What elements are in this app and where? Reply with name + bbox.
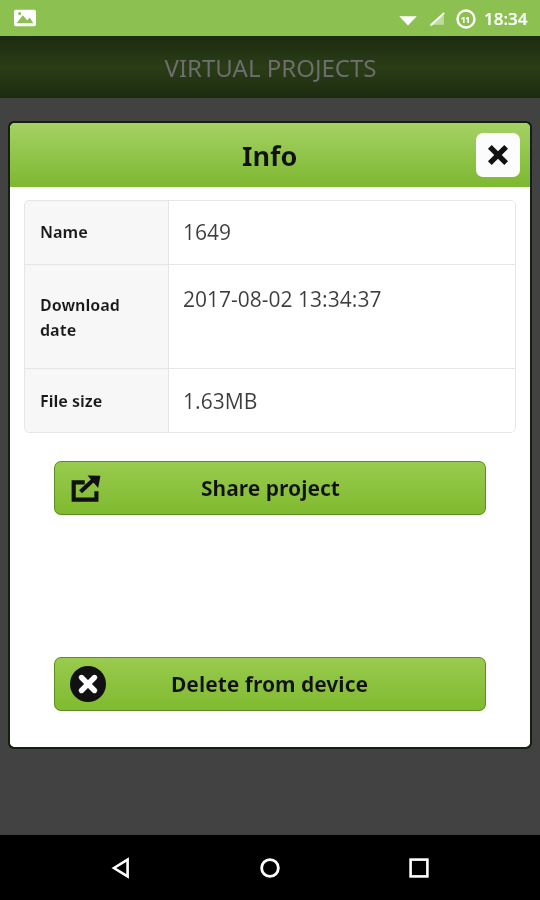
- staticText: 1.63MB: [183, 387, 258, 416]
- button[interactable]: Share project: [54, 461, 486, 515]
- button[interactable]: Recents: [391, 840, 447, 896]
- staticText: 2017-08-02 13:34:37: [183, 285, 382, 314]
- staticText: File size: [40, 390, 103, 412]
- staticText: 1649: [183, 218, 232, 247]
- staticText: Info: [242, 137, 298, 174]
- staticText: 18:34: [484, 7, 528, 30]
- button[interactable]: Close: [476, 133, 520, 177]
- staticText: 11: [461, 14, 471, 25]
- staticText: Name: [40, 221, 88, 243]
- button[interactable]: Back: [93, 840, 149, 896]
- staticText: Delete from device: [171, 670, 369, 699]
- button[interactable]: Home: [242, 840, 298, 896]
- staticText: Download date: [40, 294, 120, 340]
- staticText: Share project: [201, 474, 340, 503]
- staticText: VIRTUAL PROJECTS: [164, 51, 377, 84]
- button[interactable]: Delete from device: [54, 657, 486, 711]
